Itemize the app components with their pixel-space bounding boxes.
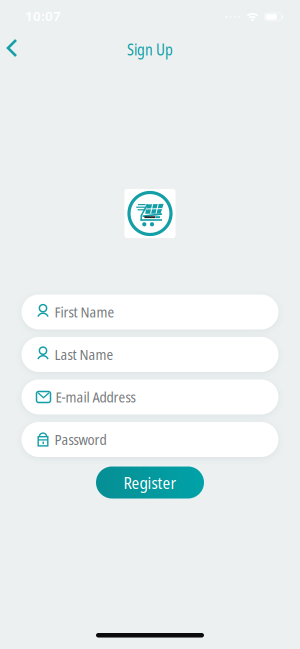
button[interactable]: Last Name	[21, 337, 278, 372]
button[interactable]: Back	[0, 31, 16, 59]
staticText: Password	[54, 430, 106, 449]
button[interactable]: E-mail Address	[21, 379, 278, 414]
staticText: E-mail Address	[55, 387, 135, 407]
button[interactable]: First Name	[21, 294, 278, 329]
staticText: First Name	[54, 302, 114, 322]
button[interactable]: Password	[21, 422, 278, 457]
staticText: 10:07	[25, 7, 61, 25]
button[interactable]: Register	[96, 466, 204, 498]
staticText: Last Name	[54, 345, 113, 364]
staticText: Register	[123, 471, 176, 494]
staticText: Sign Up	[127, 39, 173, 60]
